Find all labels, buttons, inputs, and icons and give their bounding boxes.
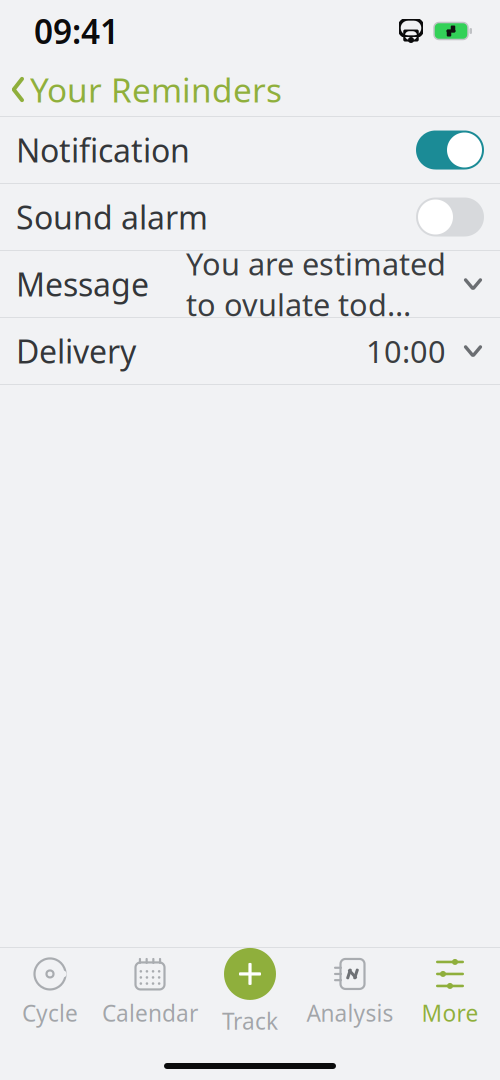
staticText: 09:41	[34, 9, 119, 53]
staticText: Track	[222, 1006, 278, 1036]
button[interactable]: Message	[0, 251, 500, 317]
button[interactable]: Analysis	[300, 948, 400, 1036]
button[interactable]: Delivery	[0, 318, 500, 384]
staticText: Message	[16, 263, 149, 305]
staticText: Sound alarm	[16, 196, 208, 238]
staticText: Your Reminders	[30, 67, 282, 112]
staticText: Delivery	[16, 330, 136, 372]
button[interactable]: Track	[200, 948, 300, 1036]
button[interactable]: Notification	[0, 117, 500, 183]
staticText: More	[421, 998, 478, 1028]
staticText: Calendar	[102, 998, 198, 1028]
button[interactable]: Calendar	[100, 948, 200, 1036]
staticText: Analysis	[306, 998, 393, 1028]
button[interactable]: Cycle	[0, 948, 100, 1036]
button[interactable]: Your Reminders	[0, 59, 296, 120]
staticText: 10:00	[366, 331, 446, 371]
staticText: Cycle	[22, 998, 78, 1028]
staticText: Notification	[16, 129, 190, 171]
staticText: You are estimated to ovulate tod…	[186, 243, 446, 325]
button[interactable]: More	[400, 948, 500, 1036]
button[interactable]: Sound alarm	[0, 184, 500, 250]
